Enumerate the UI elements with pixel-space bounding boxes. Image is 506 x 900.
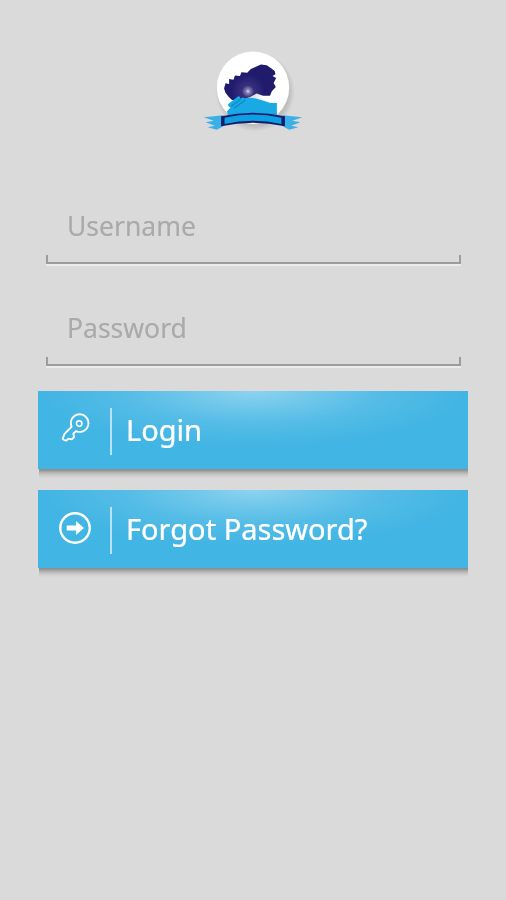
- staticText: Forgot Password?: [126, 509, 368, 548]
- button[interactable]: Password: [46, 308, 461, 366]
- other: Login: [59, 413, 91, 445]
- other: Forgot password: [59, 512, 91, 544]
- staticText: Login: [126, 410, 202, 449]
- staticText: Username: [67, 208, 196, 244]
- button[interactable]: Username: [46, 206, 461, 264]
- button[interactable]: Forgot password: [38, 490, 468, 568]
- button[interactable]: Login: [38, 391, 468, 469]
- staticText: Password: [67, 310, 187, 346]
